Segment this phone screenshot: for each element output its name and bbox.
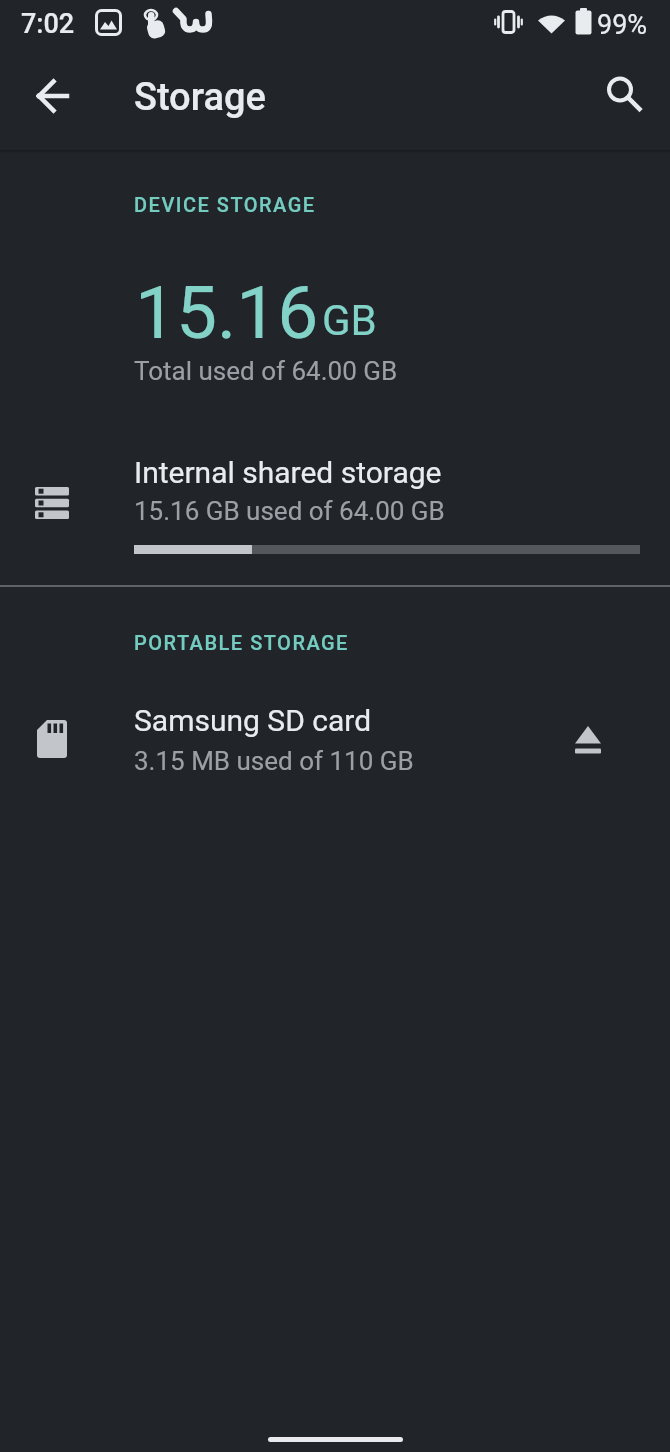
staticText: GB	[322, 296, 377, 345]
button[interactable]	[24, 68, 80, 124]
button[interactable]	[592, 64, 648, 120]
staticText: 3.15 MB used of 110 GB	[134, 746, 414, 776]
button[interactable]	[0, 685, 670, 795]
staticText: Samsung SD card	[134, 703, 372, 738]
staticText: 15.16 GB used of 64.00 GB	[134, 496, 445, 526]
staticText: DEVICE STORAGE	[134, 193, 316, 216]
button[interactable]	[0, 435, 670, 570]
staticText: 99%	[597, 9, 648, 41]
staticText: Internal shared storage	[134, 455, 442, 490]
staticText: 15.16	[135, 270, 319, 356]
staticText: Storage	[134, 75, 266, 120]
staticText: 7:02	[21, 8, 75, 40]
staticText: Total used of 64.00 GB	[134, 356, 398, 386]
staticText: PORTABLE STORAGE	[134, 631, 349, 654]
button[interactable]	[560, 712, 616, 768]
